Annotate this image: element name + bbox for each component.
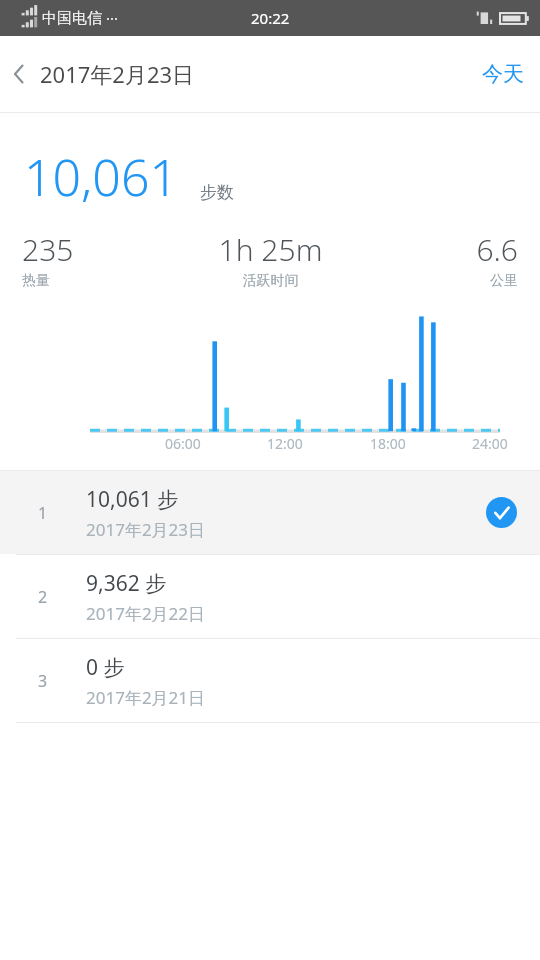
staticText: 18:00 [370,434,406,453]
staticText: 20:22 [251,8,290,28]
button[interactable]: Back [0,51,203,97]
other: Selected [486,497,517,528]
staticText: 06:00 [165,434,201,453]
button[interactable]: 1 [0,471,540,554]
staticText: 中国电信 [42,9,102,28]
staticText: 24:00 [472,434,508,453]
staticText: 公里 [353,272,518,290]
button[interactable]: 今天 [466,49,540,99]
staticText: ··· [102,8,118,28]
staticText: 1 [38,502,48,524]
staticText: 今天 [482,61,524,87]
staticText: 3 [38,670,48,692]
staticText: 2017年2月23日 [86,518,206,541]
button[interactable]: 2 [0,555,540,638]
other: Back [8,59,30,89]
staticText: 10,061 [24,143,178,211]
staticText: 12:00 [267,434,303,453]
staticText: 2017年2月22日 [86,602,206,625]
staticText: 9,362 步 [86,569,167,598]
staticText: 2 [38,586,48,608]
staticText: 6.6 [353,229,518,270]
staticText: 235 [22,229,188,270]
staticText: 2017年2月23日 [40,59,195,89]
button[interactable]: 3 [0,639,540,722]
staticText: 2017年2月21日 [86,686,206,709]
staticText: 1h 25m [188,229,353,270]
staticText: 活跃时间 [188,272,353,290]
staticText: 0 步 [86,653,125,682]
staticText: 热量 [22,272,188,290]
staticText: 步数 [200,182,234,203]
staticText: 10,061 步 [86,485,179,514]
